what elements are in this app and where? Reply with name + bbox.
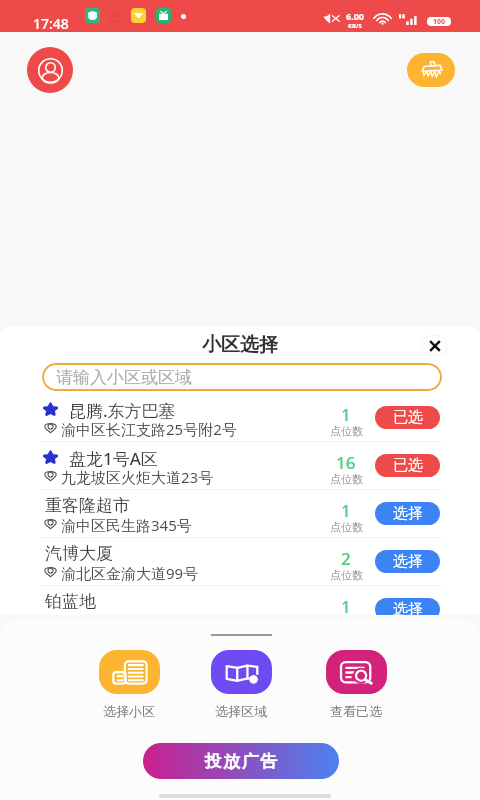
button[interactable]: 已选 [375,454,440,477]
staticText: 渝中区民生路345号 [61,515,192,535]
button[interactable]: Close [421,335,448,356]
staticText: 选择 [393,504,423,523]
button[interactable]: Account [27,47,73,93]
staticText: 已选 [393,456,423,475]
button[interactable]: 选择 [375,502,440,525]
staticText: 请输入小区或区域 [56,367,192,388]
staticText: 点位数 [330,424,363,438]
staticText: 渝中区长江支路25号附2号 [61,419,237,439]
button[interactable]: Clean [407,53,455,87]
button[interactable]: 已选 [375,406,440,429]
staticText: 16 [336,451,356,474]
button[interactable]: 盘龙1号A区 [0,442,480,490]
button[interactable]: 重客隆超市 [0,490,480,538]
button[interactable]: 铂蓝地 [0,586,480,615]
staticText: 点位数 [330,520,363,534]
staticText: 选择小区 [103,703,155,719]
staticText: 17:48 [33,14,69,33]
staticText: 支 [108,9,121,25]
staticText: 选择区域 [215,703,267,719]
staticText: 100 [433,17,446,26]
staticText: 九龙坡区火炬大道23号 [61,467,214,487]
staticText: 渝北区金渝大道99号 [61,563,199,583]
button[interactable]: 汽博大厦 [0,538,480,586]
staticText: 选择 [393,552,423,571]
staticText: 投放广告 [204,751,278,772]
button[interactable]: 查看已选 [315,650,397,719]
staticText: 选择 [393,600,423,615]
staticText: 查看已选 [330,703,382,719]
staticText: KB/S [348,22,362,30]
staticText: 已选 [393,408,423,427]
button[interactable]: 请输入小区或区域 [42,363,442,391]
staticText: 点位数 [330,568,363,582]
button[interactable]: 选择 [375,598,440,615]
staticText: 1 [341,499,351,522]
staticText: 1 [341,595,351,615]
staticText: 6.00 [346,10,364,22]
staticText: 2 [341,547,351,570]
button[interactable]: 选择 [375,550,440,573]
staticText: 盘龙1号A区 [69,447,158,470]
staticText: 铂蓝地 [45,591,96,612]
staticText: 小区选择 [202,333,278,357]
staticText: 1 [341,403,351,426]
staticText: 汽博大厦 [45,543,113,564]
button[interactable]: 昆腾.东方巴塞 [0,394,480,442]
staticText: 点位数 [330,472,363,486]
staticText: 重客隆超市 [45,495,130,516]
button[interactable]: 选择小区 [88,650,170,719]
button[interactable]: 选择区域 [200,650,282,719]
staticText: 昆腾.东方巴塞 [69,399,176,422]
button[interactable]: 投放广告 [143,743,339,779]
